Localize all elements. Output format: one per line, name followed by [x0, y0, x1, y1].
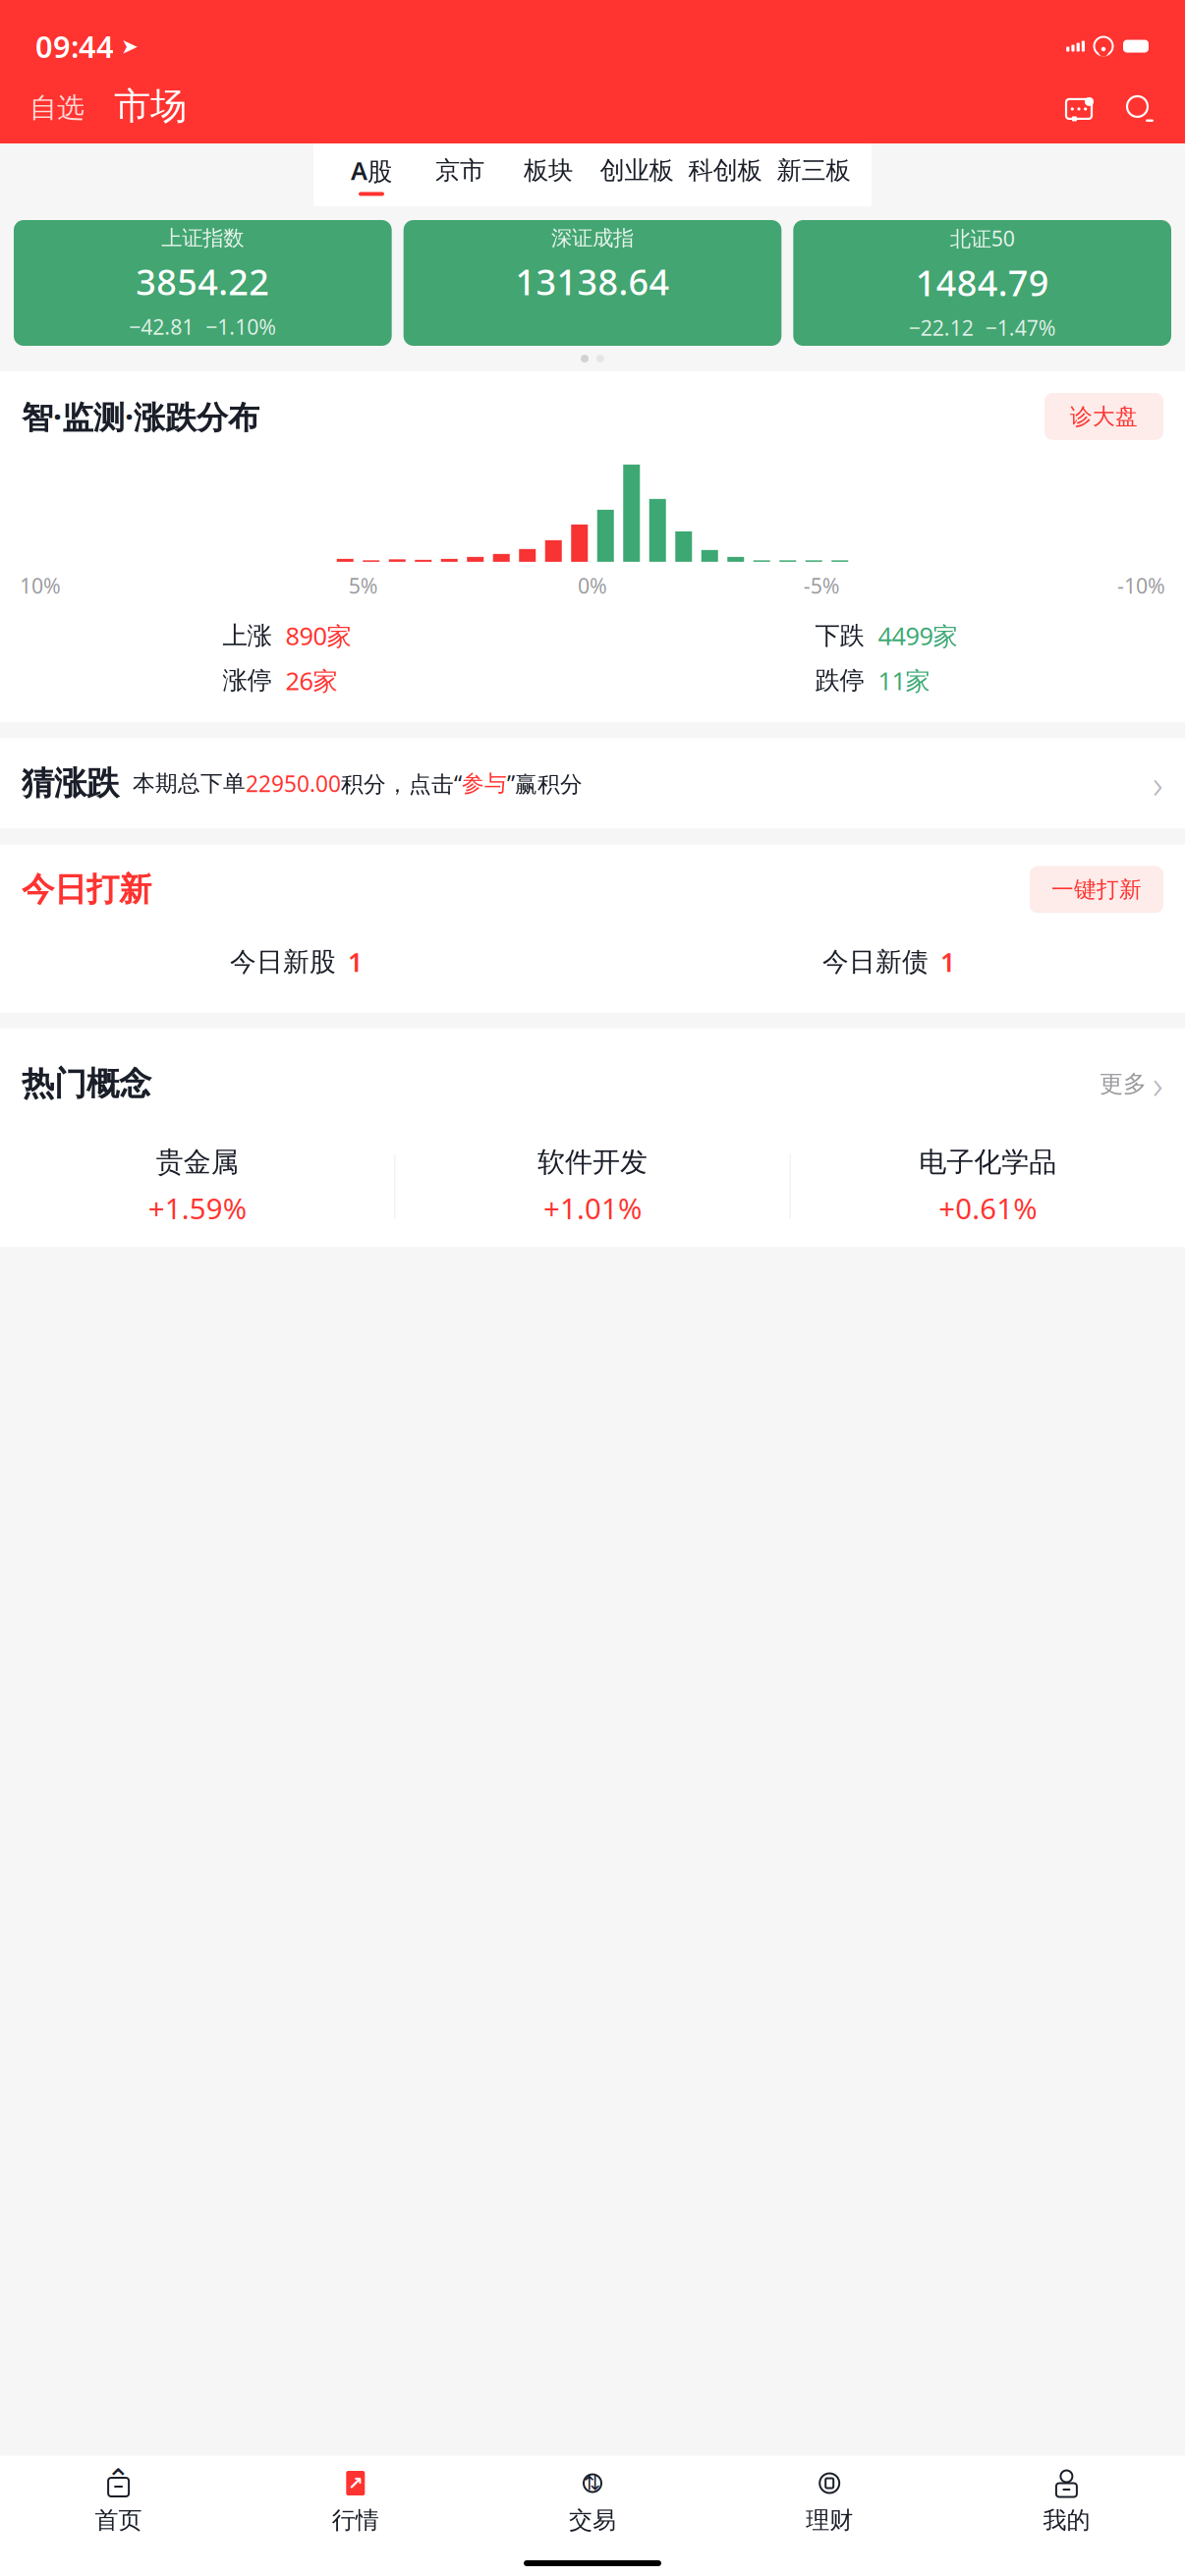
- staticText: +1.59%: [148, 1189, 246, 1227]
- button[interactable]: 一键打新: [1030, 866, 1163, 913]
- staticText: ⇅: [584, 2472, 601, 2494]
- staticText: 本期总下单: [133, 770, 246, 797]
- staticText: ↗: [348, 2473, 363, 2494]
- staticText: ›: [1153, 1058, 1163, 1110]
- staticText: 上涨: [223, 620, 272, 651]
- button[interactable]: 新三板: [769, 149, 858, 200]
- staticText: 890家: [285, 619, 351, 652]
- staticText: 智·监测·涨跌分布: [22, 396, 259, 437]
- staticText: 3854.22: [136, 258, 270, 305]
- staticText: ”赢积分: [507, 769, 583, 798]
- button[interactable]: 猜涨跌: [0, 738, 1185, 829]
- staticText: 11家: [878, 664, 930, 697]
- button[interactable]: 今日新债: [592, 935, 1185, 989]
- staticText: -10%: [1117, 572, 1165, 599]
- staticText: 10%: [20, 572, 61, 599]
- staticText: A股: [351, 154, 392, 187]
- staticText: 1484.79: [915, 259, 1049, 306]
- button[interactable]: 上证指数: [14, 220, 392, 346]
- button[interactable]: 消息: [1057, 87, 1100, 131]
- staticText: 诊大盘: [1070, 403, 1138, 430]
- button[interactable]: 贵金属: [0, 1141, 394, 1231]
- staticText: 5%: [349, 572, 378, 599]
- button[interactable]: 理财: [711, 2464, 948, 2539]
- staticText: 13138.64: [515, 258, 670, 305]
- staticText: 新三板: [777, 155, 850, 186]
- button[interactable]: 板块: [504, 149, 592, 200]
- staticText: 热门概念: [22, 1064, 151, 1104]
- staticText: 自选: [29, 91, 85, 125]
- staticText: 涨停: [223, 665, 272, 696]
- button[interactable]: 搜索: [1118, 87, 1161, 131]
- staticText: 1: [940, 944, 955, 979]
- button[interactable]: 软件开发: [395, 1141, 790, 1231]
- staticText: 软件开发: [537, 1145, 648, 1179]
- button[interactable]: ⇅: [474, 2464, 711, 2539]
- staticText: 市场: [114, 84, 187, 129]
- staticText: -5%: [803, 572, 840, 599]
- staticText: 理财: [806, 2506, 853, 2535]
- staticText: 首页: [95, 2506, 142, 2535]
- staticText: 猜涨跌: [22, 763, 119, 804]
- staticText: 科创板: [688, 155, 762, 186]
- staticText: 交易: [569, 2506, 616, 2535]
- staticText: 一键打新: [1051, 876, 1142, 903]
- button[interactable]: 深证成指: [404, 220, 782, 346]
- staticText: 上证指数: [161, 225, 244, 251]
- staticText: 贵金属: [156, 1145, 238, 1179]
- staticText: 创业板: [600, 155, 674, 186]
- staticText: 今日打新: [22, 869, 151, 910]
- staticText: 1: [348, 944, 363, 979]
- staticText: −22.12 −1.47%: [909, 314, 1056, 342]
- button[interactable]: 市场: [106, 82, 195, 131]
- staticText: ⌃: [106, 2463, 131, 2496]
- button[interactable]: 我的: [948, 2464, 1185, 2539]
- staticText: 0%: [578, 572, 607, 599]
- button[interactable]: 北证50: [793, 220, 1171, 346]
- staticText: 积分，点击“: [341, 769, 462, 798]
- button[interactable]: 创业板: [592, 149, 681, 200]
- staticText: 京市: [435, 155, 484, 186]
- staticText: 跌停: [815, 665, 864, 696]
- staticText: 行情: [332, 2506, 379, 2535]
- staticText: ›: [1153, 757, 1163, 810]
- staticText: 4499家: [878, 619, 958, 652]
- button[interactable]: 科创板: [681, 149, 769, 200]
- button[interactable]: 诊大盘: [1044, 393, 1163, 440]
- staticText: 我的: [1043, 2506, 1090, 2535]
- staticText: 北证50: [950, 224, 1015, 252]
- staticText: −42.81 −1.10%: [129, 313, 276, 341]
- staticText: 深证成指: [551, 225, 634, 251]
- button[interactable]: A股: [327, 148, 416, 202]
- button[interactable]: 电子化学品: [791, 1141, 1185, 1231]
- staticText: +0.61%: [939, 1189, 1037, 1227]
- staticText: 参与: [462, 770, 507, 797]
- button[interactable]: 京市: [416, 149, 504, 200]
- staticText: 更多: [1100, 1069, 1147, 1098]
- staticText: ➤: [114, 34, 139, 58]
- staticText: 26家: [285, 664, 338, 697]
- staticText: +1.01%: [543, 1189, 642, 1227]
- staticText: 下跌: [815, 620, 864, 651]
- staticText: 09:44: [35, 26, 114, 66]
- button[interactable]: ⌃: [0, 2464, 237, 2539]
- button[interactable]: ↗: [237, 2464, 474, 2539]
- button[interactable]: 自选: [24, 85, 90, 131]
- button[interactable]: 今日新股: [0, 935, 592, 989]
- staticText: 今日新债: [822, 946, 929, 978]
- button[interactable]: 更多: [1100, 1052, 1163, 1116]
- staticText: 电子化学品: [919, 1145, 1057, 1179]
- staticText: 今日新股: [230, 946, 336, 978]
- staticText: 板块: [524, 155, 573, 186]
- staticText: 22950.00: [246, 769, 341, 798]
